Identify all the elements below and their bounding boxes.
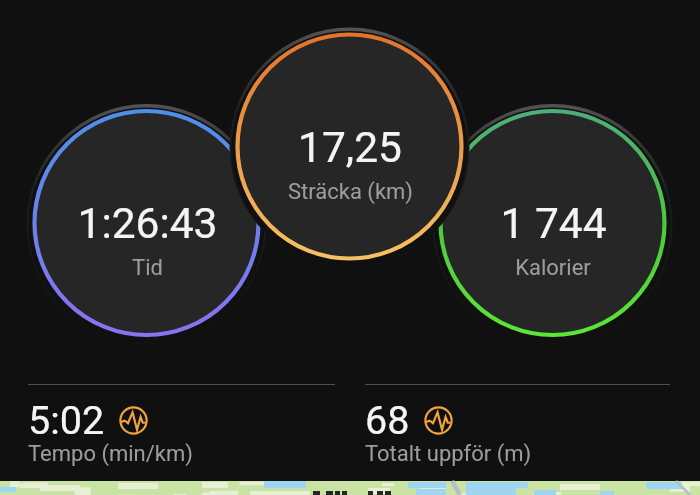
button[interactable]: 1 744 bbox=[423, 199, 683, 281]
button[interactable]: 17,25 bbox=[220, 123, 480, 205]
staticText: Tid bbox=[132, 255, 163, 281]
staticText: 68 bbox=[365, 397, 410, 443]
staticText: 5:02 bbox=[28, 397, 105, 443]
staticText: Tempo (min/km) bbox=[28, 441, 193, 467]
button[interactable]: 1:26:43 bbox=[17, 199, 277, 281]
button[interactable]: 5:02 bbox=[25, 384, 335, 469]
staticText: Totalt uppför (m) bbox=[365, 441, 532, 467]
other: Activity detail bbox=[423, 405, 454, 436]
staticText: 1:26:43 bbox=[77, 199, 218, 249]
staticText: 1 744 bbox=[500, 199, 607, 249]
button[interactable]: 68 bbox=[362, 384, 670, 469]
staticText: Sträcka (km) bbox=[288, 179, 413, 205]
other: Activity detail bbox=[118, 405, 149, 436]
staticText: Kalorier bbox=[515, 255, 591, 281]
staticText: 17,25 bbox=[298, 123, 402, 173]
